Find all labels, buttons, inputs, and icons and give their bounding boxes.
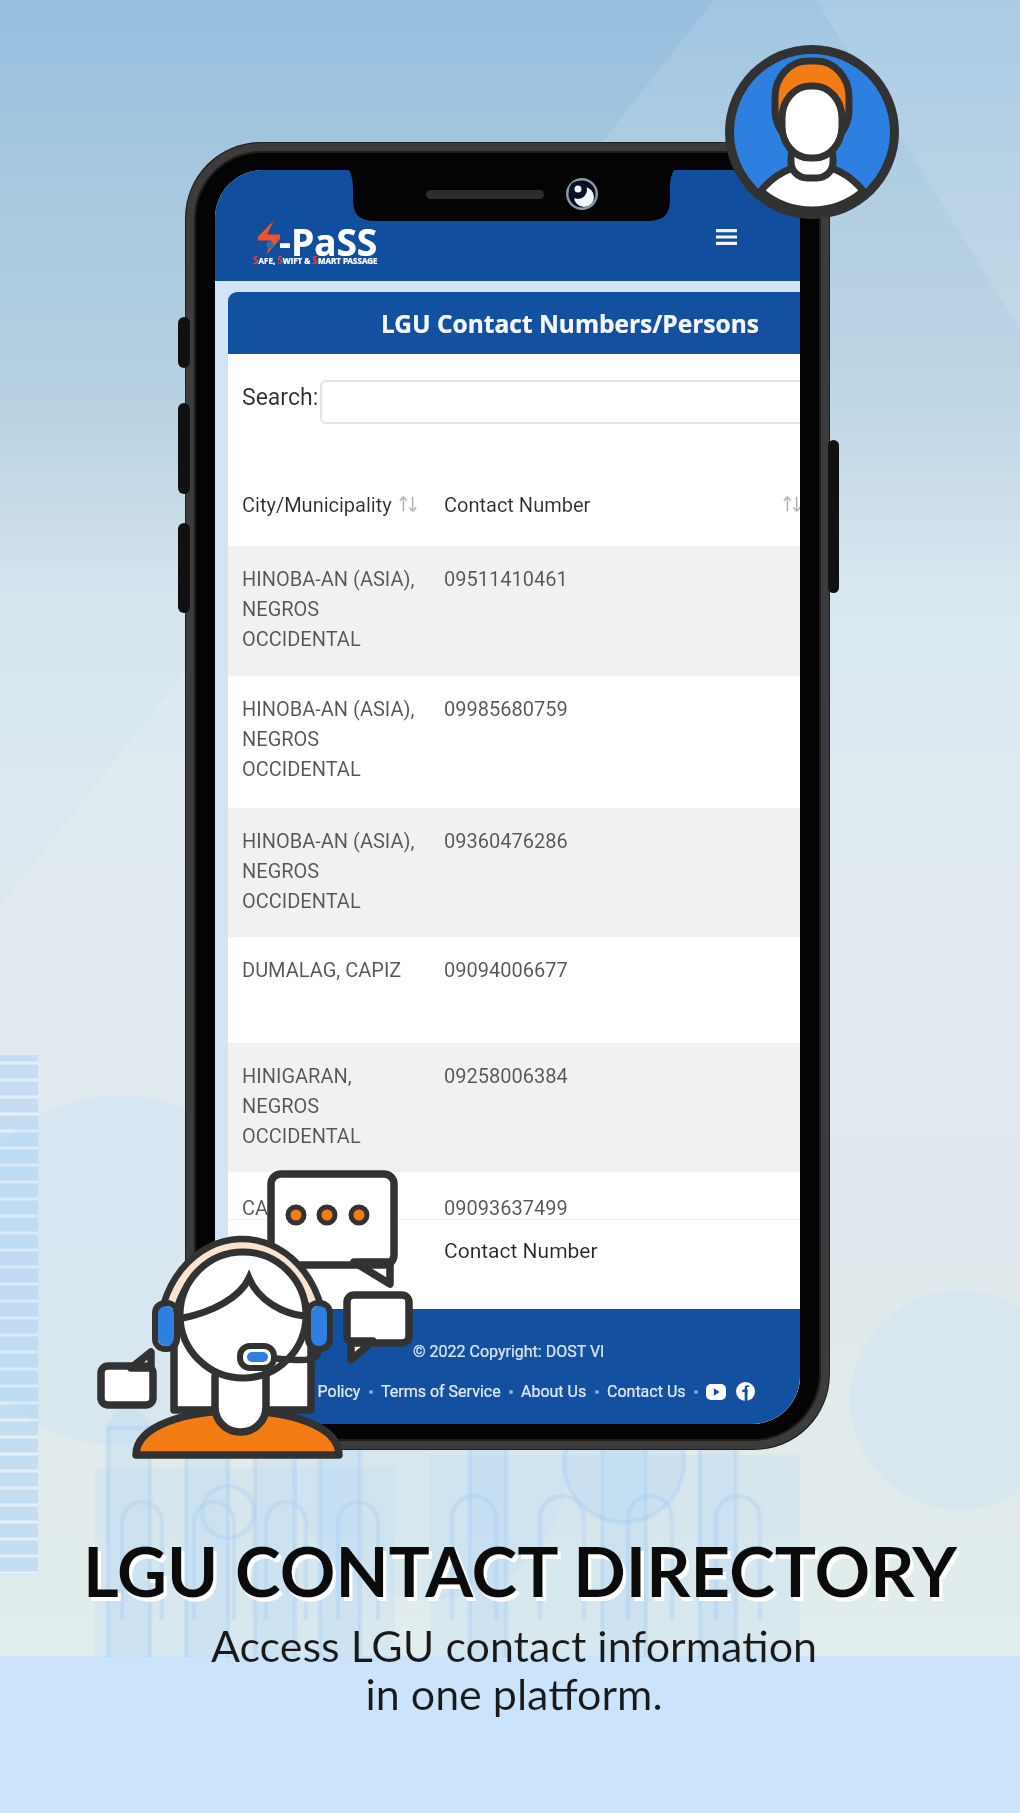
staticText: City/Municipality (242, 493, 392, 516)
staticText: y Policy (306, 1382, 361, 1401)
button[interactable] (228, 1172, 800, 1309)
button[interactable]: HINIGARAN, NEGROS OCCIDENTAL (228, 1043, 800, 1172)
staticText: 09258006384 (444, 1064, 568, 1087)
staticText: HINOBA-AN (ASIA), NEGROS OCCIDENTAL (242, 697, 442, 781)
staticText: DUMALAG, CAPIZ (242, 958, 442, 981)
staticText: LGU CONTACT DIRECTORY (10, 1529, 1020, 1612)
staticText: 09511410461 (444, 567, 568, 590)
button[interactable]: HINOBA-AN (ASIA), NEGROS OCCIDENTAL (228, 546, 800, 676)
staticText: Contact Us (607, 1382, 686, 1401)
button[interactable]: Terms of Service (381, 1382, 501, 1401)
staticText: SAFE, SWIFT & SMART PASSAGE (253, 253, 413, 267)
staticText: 09094006677 (444, 958, 568, 981)
button[interactable] (321, 381, 800, 423)
staticText: Contact Number (444, 1239, 598, 1264)
staticText: HINOBA-AN (ASIA), NEGROS OCCIDENTAL (242, 829, 442, 913)
staticText: Search: (242, 384, 319, 411)
button[interactable]: y Policy (306, 1382, 361, 1401)
staticText: HINIGARAN, NEGROS OCCIDENTAL (242, 1064, 442, 1148)
button[interactable]: -PaSS (257, 221, 417, 263)
staticText: 09093637499 (444, 1196, 568, 1219)
staticText: 09985680759 (444, 697, 568, 720)
staticText: -PaSS (279, 216, 378, 258)
button[interactable]: HINOBA-AN (ASIA), NEGROS OCCIDENTAL (228, 676, 800, 808)
button[interactable]: Menu (704, 218, 748, 256)
button[interactable]: Facebook (736, 1382, 755, 1401)
button[interactable]: YouTube (706, 1384, 726, 1400)
staticText: © 2022 Copyright: DOST VI (413, 1342, 605, 1361)
staticText: Contact Number (444, 493, 591, 516)
staticText: CAPIZ (242, 1196, 299, 1219)
button[interactable]: About Us (521, 1382, 587, 1401)
staticText: HINOBA-AN (ASIA), NEGROS OCCIDENTAL (242, 567, 442, 651)
staticText: Terms of Service (381, 1382, 501, 1401)
staticText: 09360476286 (444, 829, 568, 852)
button[interactable]: HINOBA-AN (ASIA), NEGROS OCCIDENTAL (228, 808, 800, 937)
staticText: LGU CONTACT DIRECTORY (13, 1533, 1020, 1616)
staticText: LGU Contact Numbers/Persons (381, 307, 759, 340)
staticText: Access LGU contact information in one pl… (4, 1620, 1020, 1720)
staticText: About Us (521, 1382, 587, 1401)
button[interactable]: DUMALAG, CAPIZ (228, 937, 800, 1043)
button[interactable]: Contact Us (607, 1382, 686, 1401)
